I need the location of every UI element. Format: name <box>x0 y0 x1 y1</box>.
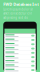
button[interactable]: Data Sync, Synced 5m ago <box>4 38 36 42</box>
button[interactable]: Reports, Synced 48m ago <box>4 59 36 63</box>
button[interactable]: Integration, Synced 2m ago <box>4 34 36 38</box>
staticText: adipiscing sed do <box>3 16 28 19</box>
button[interactable]: Settings, Synced 2h ago <box>4 68 36 72</box>
button[interactable]: Webhooks, Synced 14m ago <box>4 46 36 50</box>
staticText: Lorem ipsum dolor sit <box>3 8 33 11</box>
staticText: FWD Database Int <box>3 1 39 7</box>
staticText: amet consectetur elit <box>3 12 32 15</box>
button[interactable]: Audit Log, Synced 1h ago <box>4 64 36 68</box>
button[interactable]: Schema, Synced 21m ago <box>4 51 36 55</box>
button[interactable]: Queries, Synced 32m ago <box>4 55 36 59</box>
button[interactable]: Endpoints, Synced 9m ago <box>4 42 36 46</box>
